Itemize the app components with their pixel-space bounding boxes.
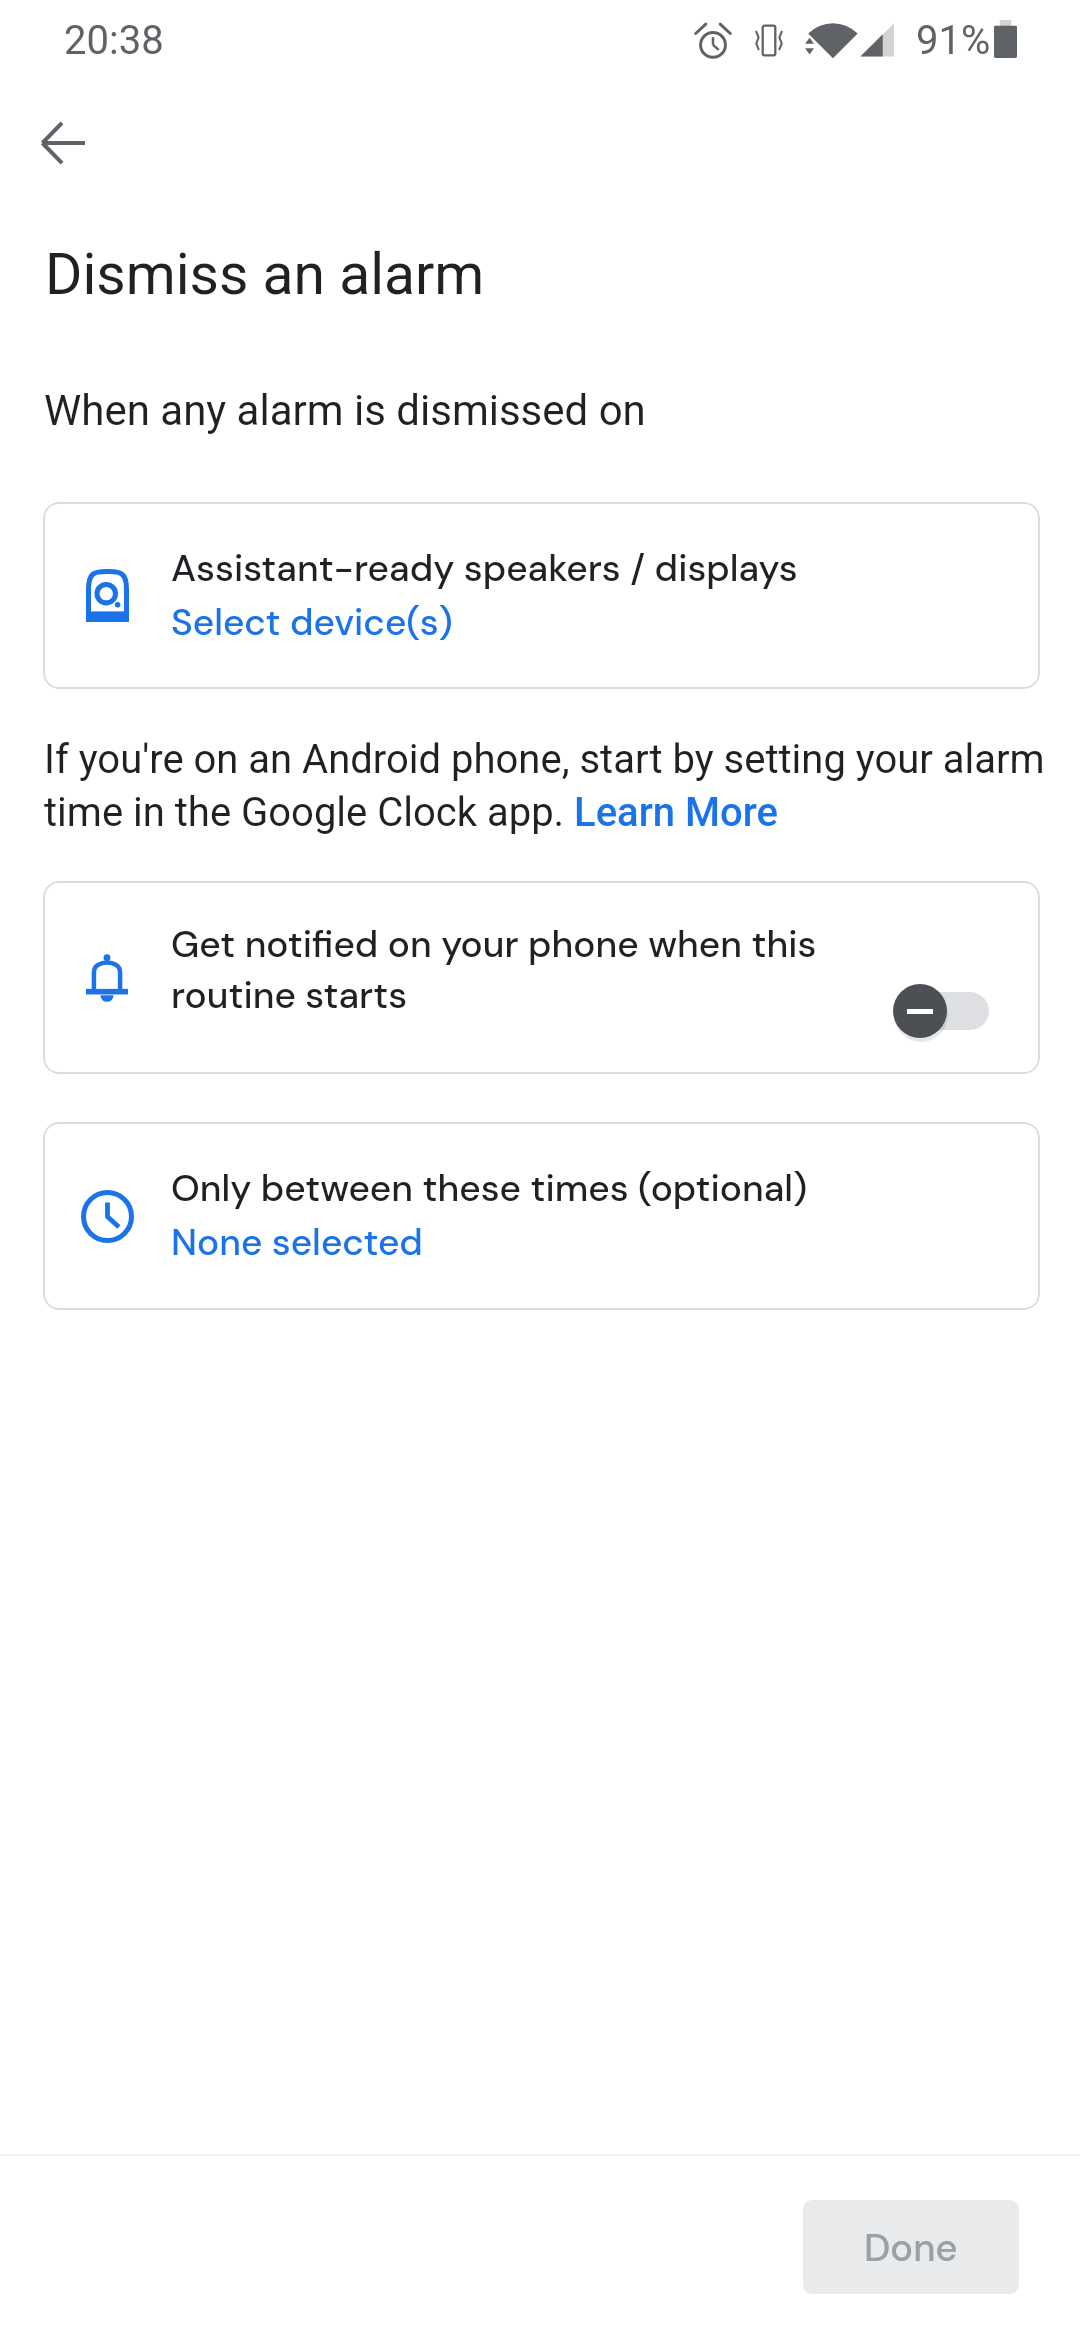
button[interactable]: Only between these times (optional) [43, 1122, 1040, 1310]
staticText: Done [864, 2223, 958, 2272]
staticText: If you're on an Android phone, start by … [44, 731, 1070, 837]
staticText: Get notified on your phone when this rou… [171, 918, 888, 1020]
button[interactable]: Select device(s) [171, 600, 453, 646]
button[interactable]: Back [15, 95, 111, 191]
staticText: When any alarm is dismissed on [44, 384, 646, 436]
staticText: 20:38 [64, 19, 164, 63]
staticText: Assistant-ready speakers / displays [171, 546, 798, 592]
button[interactable]: Get notified on your phone when this rou… [43, 881, 1040, 1074]
button[interactable]: Done [803, 2200, 1019, 2294]
button[interactable]: Assistant-ready speakers / displays [43, 502, 1040, 689]
staticText: Only between these times (optional) [171, 1166, 808, 1212]
staticText: Dismiss an alarm [45, 240, 485, 308]
staticText: 91% [916, 19, 991, 63]
button[interactable]: Notification toggle, off [893, 963, 1013, 1059]
button[interactable]: None selected [171, 1220, 423, 1266]
